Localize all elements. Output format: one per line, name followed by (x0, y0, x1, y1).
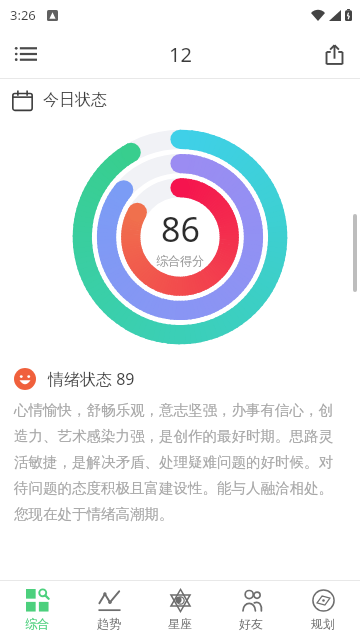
button[interactable]: 综合 (3, 581, 71, 639)
button[interactable]: 星座 (146, 581, 214, 639)
staticText: 综合得分 (156, 253, 204, 268)
staticText: 星座 (168, 616, 192, 631)
staticText: 3:26 (10, 6, 36, 24)
staticText: 今日状态 (43, 90, 107, 110)
staticText: 86 (161, 206, 200, 252)
staticText: 好友 (239, 616, 263, 631)
staticText: 趋势 (97, 616, 121, 631)
staticText: 情绪状态 89 (48, 368, 135, 390)
button[interactable]: Menu (4, 32, 48, 76)
button[interactable]: 规划 (289, 581, 357, 639)
staticText: 心情愉快，舒畅乐观，意志坚强，办事有信心，创造力、艺术感染力强，是创作的最好时期… (14, 401, 346, 524)
staticText: 规划 (311, 616, 335, 631)
button[interactable]: Share (312, 32, 356, 76)
staticText: 综合 (25, 616, 49, 631)
button[interactable]: 好友 (217, 581, 285, 639)
staticText: 12 (169, 41, 192, 68)
button[interactable]: 趋势 (75, 581, 143, 639)
